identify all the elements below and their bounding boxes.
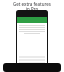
staticText: Get extra features in Pro <box>13 1 51 10</box>
button[interactable] <box>3 63 61 72</box>
